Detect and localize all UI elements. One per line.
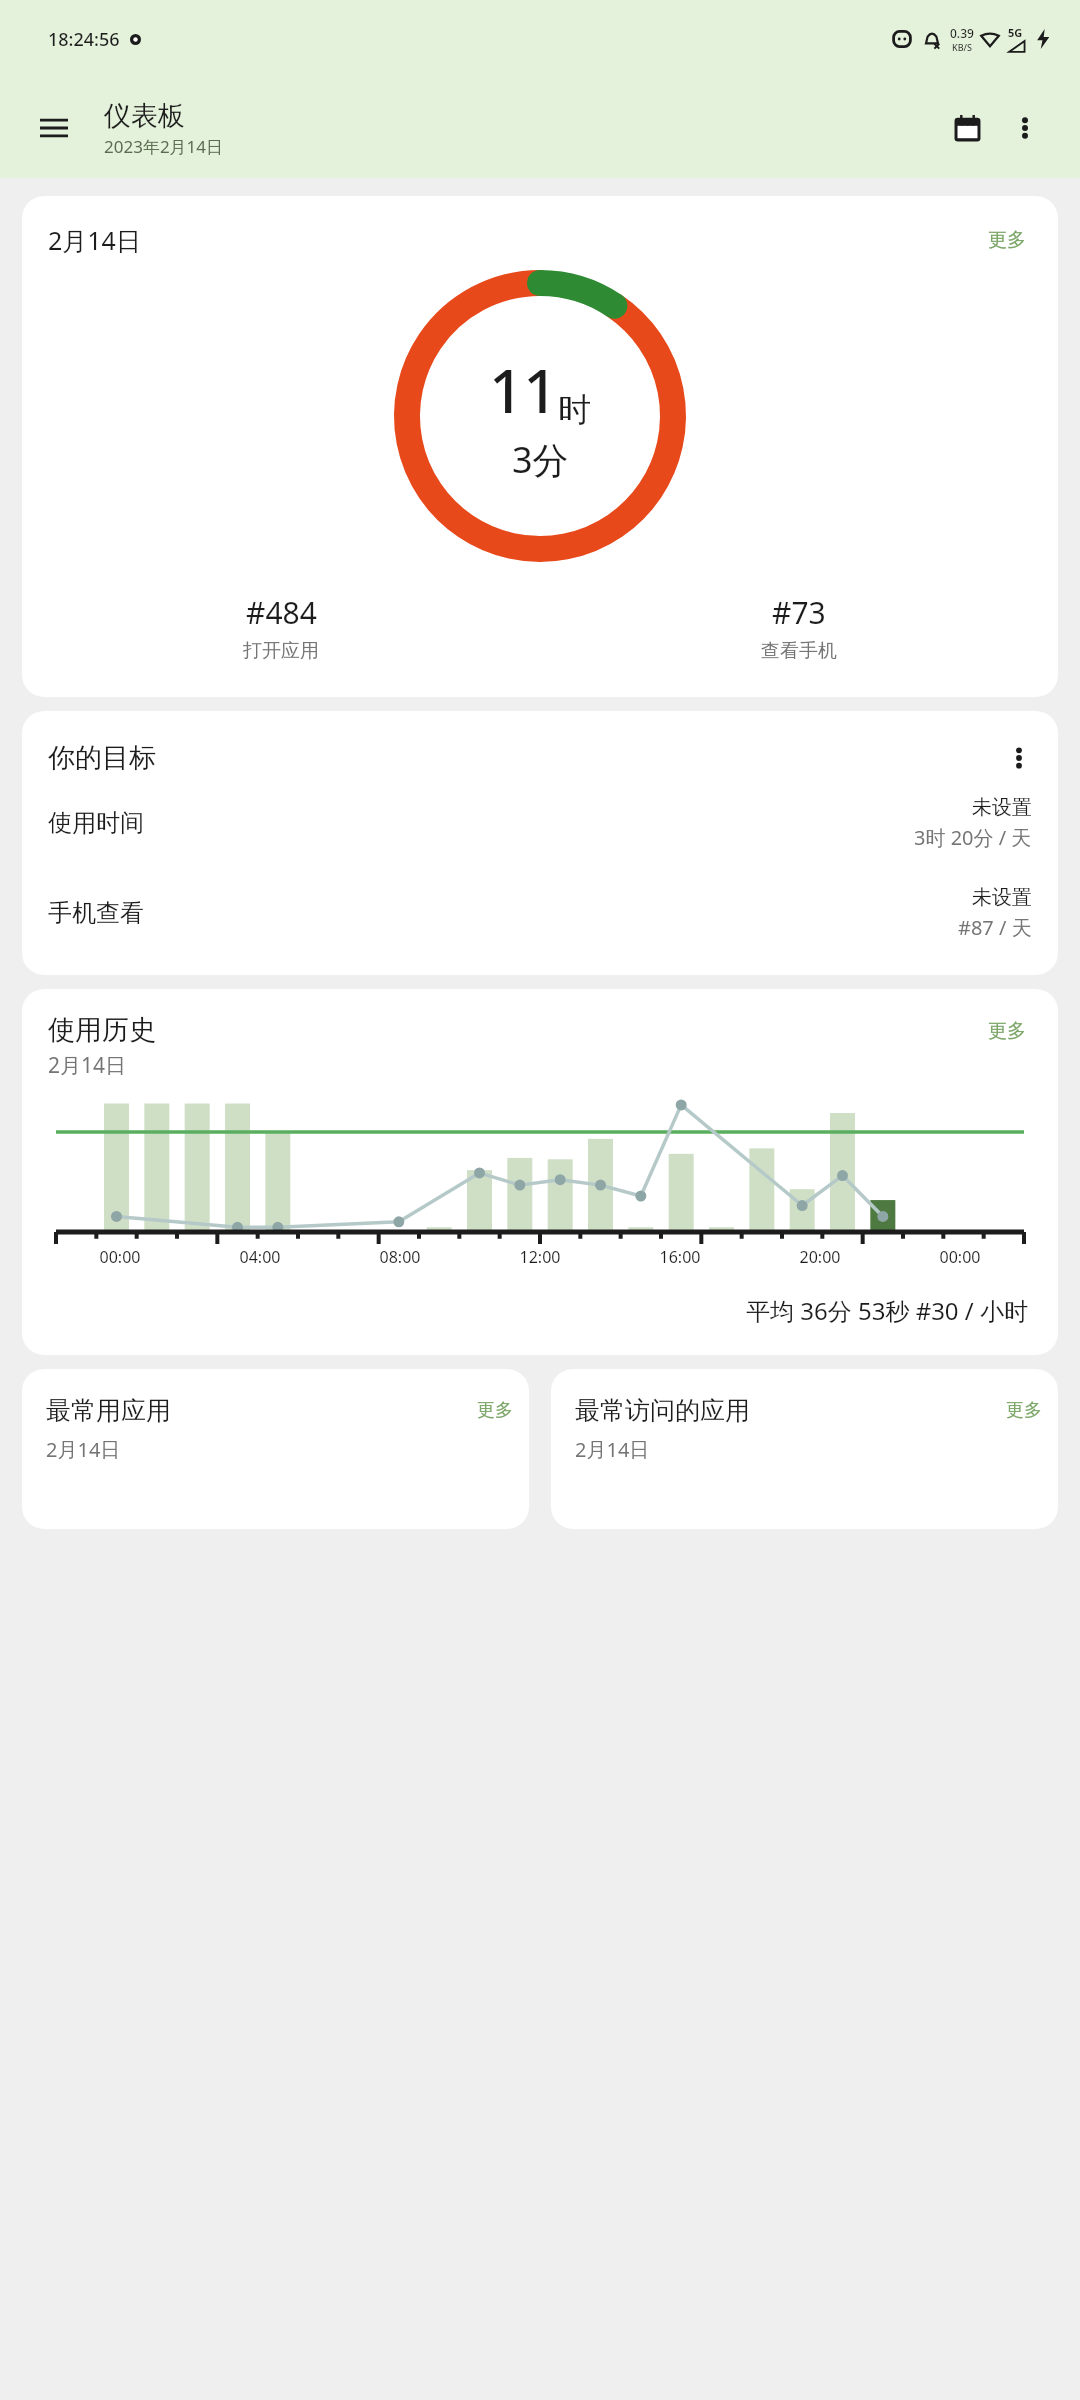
staticText: 11 [489, 349, 558, 431]
button[interactable]: 最常用应用 [22, 1369, 529, 1529]
staticText: 手机查看 [48, 898, 144, 928]
staticText: 更多 [988, 228, 1026, 252]
staticText: 查看手机 [761, 639, 837, 663]
button[interactable]: Goals options [994, 733, 1044, 783]
staticText: 20:00 [750, 1246, 890, 1268]
staticText: 00:00 [890, 1246, 1030, 1268]
staticText: #73 [772, 592, 826, 633]
staticText: 0.39 [950, 25, 974, 41]
staticText: 最常访问的应用 [575, 1395, 750, 1426]
staticText: 更多 [988, 1019, 1026, 1043]
button[interactable]: Open navigation drawer [26, 100, 82, 156]
button[interactable]: More options [996, 99, 1054, 157]
button[interactable]: 使用时间 [22, 783, 1058, 851]
staticText: 3分 [512, 435, 569, 484]
staticText: 16:00 [610, 1246, 750, 1268]
staticText: 未设置 [972, 885, 1032, 910]
staticText: 5G [1008, 25, 1023, 40]
staticText: 时 [558, 389, 591, 431]
button[interactable]: Calendar [938, 99, 996, 157]
staticText: 2023年2月14日 [104, 135, 224, 158]
button[interactable]: 最常访问的应用 [551, 1369, 1058, 1529]
staticText: 2月14日 [46, 1436, 121, 1463]
staticText: 00:00 [50, 1246, 190, 1268]
staticText: 2月14日 [48, 223, 141, 257]
staticText: 最常用应用 [46, 1395, 171, 1426]
staticText: 你的目标 [48, 741, 156, 775]
button[interactable]: #484 [22, 588, 540, 667]
staticText: 打开应用 [243, 639, 319, 663]
staticText: #87 / 天 [958, 914, 1032, 941]
staticText: 未设置 [972, 795, 1032, 820]
staticText: 2月14日 [575, 1436, 650, 1463]
staticText: 3时 20分 / 天 [914, 824, 1032, 851]
staticText: 12:00 [470, 1246, 610, 1268]
staticText: 使用时间 [48, 808, 144, 838]
staticText: 更多 [1006, 1399, 1042, 1422]
staticText: 04:00 [190, 1246, 330, 1268]
staticText: 18:24:56 [48, 27, 120, 52]
staticText: #484 [246, 592, 317, 633]
button[interactable]: 手机查看 [22, 873, 1058, 941]
button[interactable]: #73 [540, 588, 1058, 667]
button[interactable]: 更多 [982, 222, 1032, 258]
staticText: 仪表板 [104, 99, 185, 133]
staticText: 使用历史 [48, 1013, 156, 1047]
staticText: KB/S [952, 41, 972, 53]
staticText: 平均 36分 53秒 #30 / 小时 [746, 1294, 1028, 1327]
staticText: 08:00 [330, 1246, 470, 1268]
button[interactable]: 更多 [982, 1013, 1032, 1049]
staticText: 2月14日 [48, 1051, 127, 1080]
staticText: 更多 [477, 1399, 513, 1422]
